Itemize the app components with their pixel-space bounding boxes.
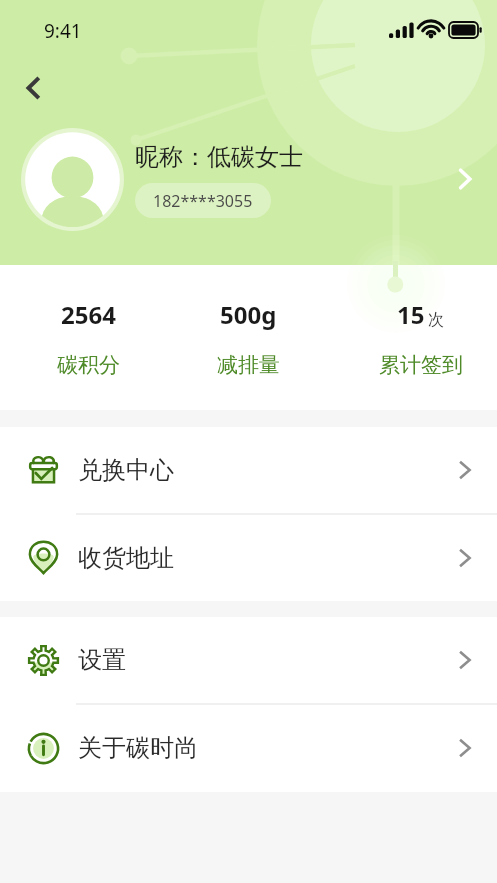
staticText: 设置	[78, 645, 126, 675]
staticText: 减排量	[217, 352, 280, 378]
button[interactable]: 兑换中心	[0, 427, 497, 513]
button[interactable]: 昵称：低碳女士	[0, 124, 497, 234]
staticText: 碳积分	[57, 352, 120, 378]
staticText: 2564	[61, 298, 116, 331]
button[interactable]: 500g	[170, 265, 327, 410]
staticText: 兑换中心	[78, 455, 174, 485]
staticText: 关于碳时尚	[78, 733, 198, 763]
button[interactable]: Back	[12, 66, 56, 110]
button[interactable]: 关于碳时尚	[0, 705, 497, 791]
button[interactable]: 设置	[0, 617, 497, 703]
staticText: 15	[397, 298, 425, 331]
staticText: 9:41	[44, 18, 82, 44]
staticText: 累计签到	[379, 352, 463, 378]
staticText: 昵称：低碳女士	[135, 142, 303, 172]
staticText: 182****3055	[153, 190, 253, 212]
staticText: 500g	[220, 298, 277, 331]
button[interactable]: 收货地址	[0, 515, 497, 601]
button[interactable]: 2564	[10, 265, 167, 410]
staticText: 收货地址	[78, 543, 174, 573]
button[interactable]: 15	[342, 265, 497, 410]
staticText: 次	[428, 310, 444, 330]
